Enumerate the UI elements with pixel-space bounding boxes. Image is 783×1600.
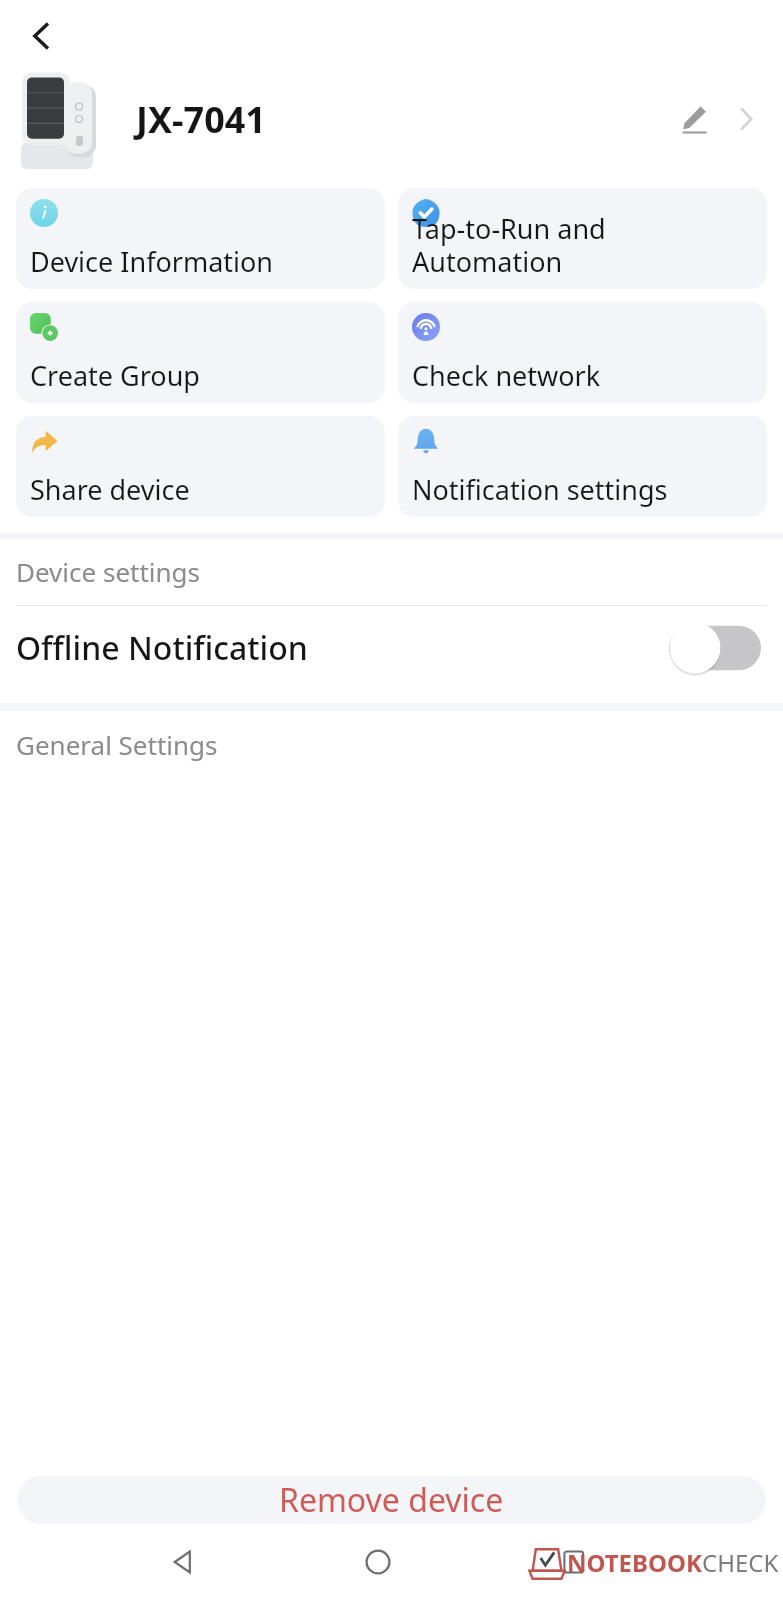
button[interactable]: Offline Notification toggle	[667, 622, 767, 674]
button[interactable]: Offline Notification	[0, 606, 783, 689]
staticText: Share device	[30, 471, 190, 508]
button[interactable]: Check network	[398, 302, 767, 403]
staticText: Device settings	[16, 554, 201, 589]
button[interactable]: Remove device	[17, 1476, 766, 1524]
staticText: Offline Notification	[16, 626, 308, 670]
staticText: Remove device	[279, 1478, 504, 1522]
button[interactable]: Device details	[721, 94, 771, 144]
button[interactable]: Share device	[16, 416, 385, 517]
button[interactable]: Tap-to-Run and Automation	[398, 188, 767, 289]
button[interactable]: Edit name	[667, 92, 721, 146]
button[interactable]: Notification settings	[398, 416, 767, 517]
staticText: Notification settings	[412, 471, 668, 508]
staticText: CHECK	[702, 1546, 779, 1579]
staticText: Create Group	[30, 357, 200, 394]
button[interactable]: Home	[349, 1533, 407, 1591]
staticText: JX-7041	[136, 95, 266, 144]
button[interactable]: Device Information	[16, 188, 385, 289]
staticText: Check network	[412, 357, 601, 394]
staticText: Device Information	[30, 243, 274, 280]
button[interactable]: Create Group	[16, 302, 385, 403]
button[interactable]: Back	[153, 1533, 211, 1591]
staticText: General Settings	[16, 727, 218, 762]
staticText: Tap-to-Run and Automation	[412, 210, 606, 280]
button[interactable]: Recents	[545, 1533, 603, 1591]
staticText: NOTEBOOK	[567, 1546, 702, 1579]
button[interactable]: Back	[14, 8, 70, 64]
